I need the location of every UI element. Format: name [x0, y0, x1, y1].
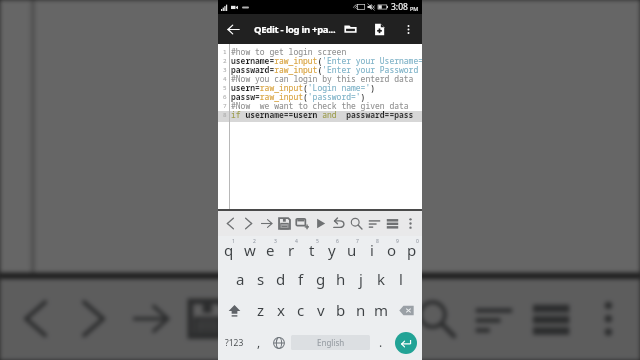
staticText: English [317, 337, 345, 348]
button[interactable]: 7 [342, 238, 362, 267]
button[interactable]: k [371, 267, 391, 296]
staticText: if username==usern and passward==pass [231, 109, 414, 120]
button[interactable]: Next [239, 211, 257, 236]
button[interactable]: c [291, 296, 311, 325]
button[interactable]: More options [394, 14, 422, 44]
button[interactable]: Run [311, 211, 329, 236]
button[interactable]: Navigate up [218, 14, 249, 44]
button[interactable]: d [271, 267, 291, 296]
button[interactable]: Format [464, 279, 521, 358]
staticText: w [244, 240, 256, 260]
button[interactable]: More options [578, 279, 635, 358]
button[interactable]: More options [401, 211, 419, 236]
staticText: 8 [376, 238, 379, 245]
button[interactable]: Previous [6, 279, 63, 358]
button[interactable]: Search [347, 211, 365, 236]
button[interactable]: j [351, 267, 371, 296]
staticText: j [359, 269, 363, 289]
staticText: 7 [356, 238, 359, 245]
button[interactable]: a [230, 267, 251, 296]
staticText: l [399, 269, 403, 289]
staticText: s [257, 269, 265, 289]
button[interactable]: s [251, 267, 271, 296]
staticText: g [316, 269, 326, 289]
staticText: #Now you can login by this enterd data [231, 73, 414, 84]
button[interactable]: v [311, 296, 331, 325]
button[interactable]: n [351, 296, 371, 325]
staticText: 0 [416, 238, 419, 245]
button[interactable]: b [331, 296, 351, 325]
staticText: passward=raw_input('Enter your Password [231, 64, 419, 75]
button[interactable]: l [391, 267, 411, 296]
button[interactable]: m [371, 296, 391, 325]
button[interactable]: Previous [221, 211, 239, 236]
staticText: o [387, 240, 397, 260]
button[interactable]: New window [235, 279, 292, 358]
staticText: m [374, 300, 389, 320]
staticText: #Now we want to check the given data [231, 100, 409, 111]
button[interactable]: Run [292, 279, 349, 358]
button[interactable]: Backspace [391, 296, 422, 325]
button[interactable]: Change language [268, 328, 289, 357]
button[interactable]: Go to line [120, 279, 177, 358]
button[interactable]: , [250, 328, 268, 357]
button[interactable]: Next [63, 279, 120, 358]
button[interactable]: 0 [402, 238, 422, 267]
button[interactable]: ?123 [218, 328, 250, 357]
staticText: n [356, 300, 366, 320]
staticText: e [266, 240, 275, 260]
staticText: , [257, 334, 261, 350]
staticText: 2 [253, 238, 256, 245]
button[interactable]: Line numbers [383, 211, 401, 236]
button[interactable]: 9 [382, 238, 402, 267]
button[interactable]: Format [365, 211, 383, 236]
button[interactable]: g [311, 267, 331, 296]
button[interactable]: x [271, 296, 291, 325]
button[interactable]: Line numbers [521, 279, 578, 358]
staticText: x [277, 300, 285, 320]
staticText: 4 [295, 238, 298, 245]
staticText: q [224, 240, 234, 260]
button[interactable]: New window [293, 211, 311, 236]
staticText: passw=raw_input('password=') [231, 91, 366, 102]
button[interactable]: Undo [329, 211, 347, 236]
button[interactable]: English [291, 335, 370, 350]
button[interactable]: Save [275, 211, 293, 236]
button[interactable]: Save [177, 279, 235, 358]
button[interactable]: f [291, 267, 311, 296]
staticText: . [379, 334, 383, 350]
button[interactable]: Shift [218, 296, 250, 325]
staticText: d [276, 269, 286, 289]
staticText: 5 [223, 84, 227, 92]
staticText: p [407, 240, 417, 260]
staticText: 5 [316, 238, 319, 245]
button[interactable]: z [250, 296, 271, 325]
button[interactable]: Go to line [257, 211, 275, 236]
staticText: 7 [223, 102, 227, 110]
button[interactable]: Search [406, 279, 464, 358]
staticText: k [377, 269, 386, 289]
button[interactable]: 2 [239, 238, 260, 267]
button[interactable]: New file [365, 14, 394, 44]
staticText: u [347, 240, 357, 260]
button[interactable]: h [331, 267, 351, 296]
button[interactable]: 4 [281, 238, 302, 267]
button[interactable]: Undo [349, 279, 406, 358]
staticText: r [288, 240, 295, 260]
staticText: a [236, 269, 245, 289]
staticText: 1 [232, 238, 235, 245]
button[interactable]: Open folder [336, 14, 365, 44]
button[interactable]: 1 [218, 238, 239, 267]
button[interactable]: 8 [362, 238, 382, 267]
staticText: v [317, 300, 325, 320]
staticText: t [309, 240, 315, 260]
staticText: b [336, 300, 346, 320]
button[interactable]: 6 [322, 238, 342, 267]
staticText: h [336, 269, 346, 289]
button[interactable]: . [372, 328, 390, 357]
staticText: QEdit - log in +pa... [254, 23, 336, 36]
button[interactable]: 5 [302, 238, 322, 267]
button[interactable]: 3 [260, 238, 281, 267]
staticText: 4 [223, 75, 227, 83]
button[interactable]: Enter [395, 332, 417, 354]
